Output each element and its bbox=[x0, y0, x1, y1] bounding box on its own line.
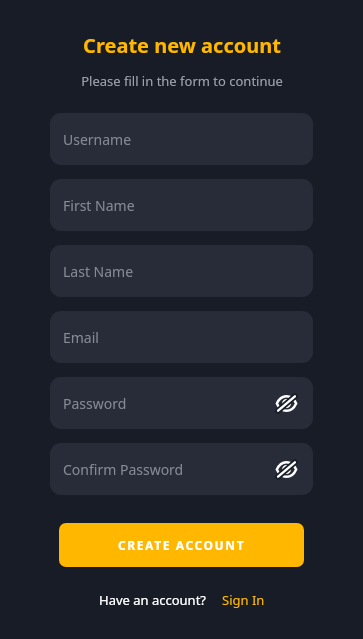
staticText: Have an account? bbox=[99, 591, 206, 609]
staticText: Sign In bbox=[222, 591, 265, 609]
staticText: Confirm Password bbox=[63, 460, 184, 479]
staticText: CREATE ACCOUNT bbox=[118, 537, 246, 553]
staticText: Last Name bbox=[63, 262, 134, 281]
staticText: First Name bbox=[63, 196, 135, 215]
button[interactable]: Username bbox=[50, 113, 313, 165]
button[interactable]: Sign In bbox=[222, 591, 265, 609]
button[interactable]: Confirm Password bbox=[50, 443, 313, 495]
button[interactable]: Show password bbox=[269, 386, 303, 420]
staticText: Password bbox=[63, 394, 127, 413]
button[interactable]: CREATE ACCOUNT bbox=[59, 523, 304, 567]
button[interactable]: Password bbox=[50, 377, 313, 429]
staticText: Username bbox=[63, 130, 132, 149]
button[interactable]: Last Name bbox=[50, 245, 313, 297]
staticText: Please fill in the form to continue bbox=[81, 72, 283, 90]
button[interactable]: Show password bbox=[269, 452, 303, 486]
button[interactable]: Email bbox=[50, 311, 313, 363]
button[interactable]: First Name bbox=[50, 179, 313, 231]
staticText: Email bbox=[63, 328, 99, 347]
staticText: Create new account bbox=[83, 32, 281, 59]
